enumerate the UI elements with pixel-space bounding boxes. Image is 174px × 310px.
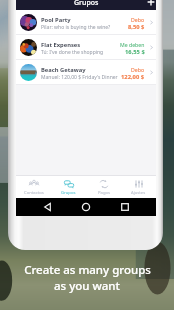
button[interactable]: Recent apps	[118, 200, 132, 214]
staticText: Tú: I've done the shopping	[41, 49, 104, 56]
staticText: 122,00 $	[121, 73, 145, 81]
staticText: Contactos	[24, 190, 44, 196]
staticText: Pool Party	[41, 16, 71, 24]
staticText: Grupos	[61, 190, 76, 196]
staticText: Ajustes	[131, 190, 146, 196]
button[interactable]: Beach Getaway	[16, 60, 156, 84]
staticText: Pagos	[98, 190, 110, 196]
button[interactable]: Contactos	[16, 176, 51, 198]
staticText: Manuel: 120,00 $ Friday's Dinner	[41, 74, 118, 81]
staticText: Beach Getaway	[41, 66, 86, 74]
button[interactable]: Ajustes	[121, 176, 156, 198]
button[interactable]: Back	[41, 200, 55, 214]
staticText: Pilar: who is buying the wine?	[41, 24, 111, 31]
button[interactable]: Pagos	[86, 176, 121, 198]
staticText: 8,50 $	[128, 23, 145, 31]
button[interactable]: Add group	[146, 0, 156, 7]
staticText: Create as many groups	[24, 262, 151, 278]
staticText: as you want	[54, 278, 120, 294]
button[interactable]: Grupos	[51, 176, 86, 198]
staticText: 16,55 $	[125, 48, 145, 56]
button[interactable]: Home	[79, 200, 93, 214]
staticText: Debo	[131, 66, 145, 73]
staticText: Debo	[131, 16, 145, 23]
staticText: Me deben	[120, 41, 145, 48]
button[interactable]: Pool Party	[16, 10, 156, 34]
staticText: Flat Expenses	[41, 41, 81, 49]
staticText: Grupos	[74, 0, 99, 8]
button[interactable]: Flat Expenses	[16, 35, 156, 59]
